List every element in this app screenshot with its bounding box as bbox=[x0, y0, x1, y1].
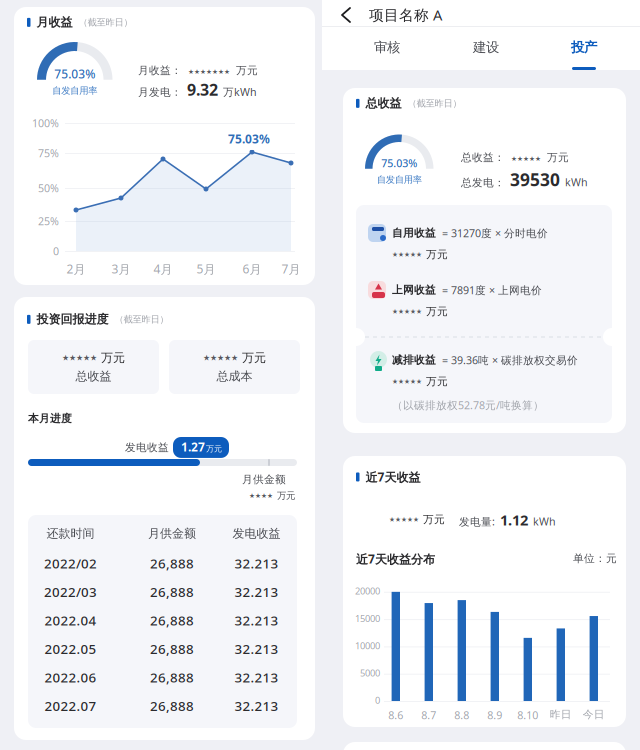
staticText: = 39.36吨 × 碳排放权交易价 bbox=[442, 353, 578, 367]
staticText: 本月进度 bbox=[28, 412, 72, 425]
staticText: 7月 bbox=[281, 261, 300, 277]
staticText: 2022/03 bbox=[44, 583, 97, 601]
staticText: （以碳排放权52.78元/吨换算） bbox=[392, 398, 544, 412]
staticText: 8.9 bbox=[487, 708, 502, 722]
staticText: 2月 bbox=[66, 261, 85, 277]
staticText: 26,888 bbox=[150, 697, 194, 715]
staticText: 26,888 bbox=[150, 668, 194, 686]
staticText: 万元 bbox=[101, 350, 125, 365]
staticText: 75.03% bbox=[54, 66, 95, 82]
staticText: kWh bbox=[565, 175, 588, 189]
staticText: 20000 bbox=[355, 585, 380, 597]
staticText: 5月 bbox=[196, 261, 215, 277]
staticText: 0 bbox=[53, 244, 59, 258]
staticText: 万元 bbox=[426, 305, 448, 318]
staticText: 2022.05 bbox=[44, 640, 96, 658]
staticText: = 7891度 × 上网电价 bbox=[442, 283, 542, 297]
staticText: 8.10 bbox=[517, 708, 538, 722]
staticText: 26,888 bbox=[150, 583, 194, 601]
staticText: 总成本 bbox=[216, 369, 252, 384]
staticText: 9.32 bbox=[187, 79, 218, 100]
staticText: 75.03% bbox=[228, 131, 270, 147]
staticText: 自发自用率 bbox=[52, 85, 97, 96]
staticText: 32.213 bbox=[234, 668, 278, 686]
staticText: 8.8 bbox=[454, 708, 469, 722]
staticText: ★★★★★★★ bbox=[188, 68, 230, 76]
staticText: 万元 bbox=[206, 444, 222, 454]
staticText: 万元 bbox=[423, 513, 445, 526]
staticText: 1.27 bbox=[181, 439, 205, 455]
staticText: 26,888 bbox=[150, 611, 194, 629]
staticText: 4月 bbox=[153, 261, 172, 277]
staticText: 25% bbox=[38, 214, 59, 228]
staticText: 减排收益 bbox=[392, 353, 436, 366]
staticText: 1.12 bbox=[500, 510, 528, 529]
staticText: 6月 bbox=[242, 261, 261, 277]
staticText: 3月 bbox=[111, 261, 130, 277]
staticText: ★★★★★ bbox=[392, 251, 422, 258]
staticText: = 31270度 × 分时电价 bbox=[442, 226, 548, 240]
staticText: 8.7 bbox=[421, 708, 436, 722]
staticText: 万元 bbox=[547, 151, 569, 164]
staticText: 26,888 bbox=[150, 554, 194, 572]
staticText: （截至昨日） bbox=[78, 17, 132, 28]
staticText: 自发自用率 bbox=[377, 174, 422, 185]
staticText: 总收益： bbox=[461, 151, 505, 164]
staticText: ★★★★★ bbox=[511, 155, 541, 163]
staticText: 审核 bbox=[374, 39, 400, 55]
staticText: 75.03% bbox=[381, 156, 417, 170]
staticText: 投资回报进度 bbox=[36, 312, 108, 327]
staticText: 8.6 bbox=[388, 708, 403, 722]
staticText: 发电收益 bbox=[125, 441, 169, 454]
staticText: 上网收益 bbox=[392, 283, 436, 296]
staticText: 总收益 bbox=[75, 369, 111, 384]
staticText: 万元 bbox=[426, 248, 448, 261]
staticText: 2022/02 bbox=[44, 554, 97, 572]
staticText: kWh bbox=[533, 514, 556, 528]
staticText: 发电量: bbox=[459, 514, 495, 529]
staticText: ★★★★★ bbox=[389, 516, 419, 523]
staticText: 万元 bbox=[242, 350, 266, 365]
staticText: 32.213 bbox=[234, 640, 278, 658]
staticText: 昨日 bbox=[550, 708, 572, 721]
button[interactable]: 投产 bbox=[559, 27, 609, 70]
staticText: 26,888 bbox=[150, 640, 194, 658]
staticText: 100% bbox=[32, 116, 59, 130]
staticText: ★★★★★ bbox=[392, 378, 422, 385]
staticText: 投产 bbox=[571, 39, 597, 55]
staticText: 月供金额 bbox=[148, 526, 196, 541]
staticText: 今日 bbox=[583, 708, 605, 721]
staticText: 还款时间 bbox=[46, 526, 94, 541]
staticText: ★★★★★ bbox=[203, 353, 238, 362]
staticText: 万kWh bbox=[223, 85, 257, 99]
staticText: 项目名称 A bbox=[369, 5, 442, 24]
staticText: 月收益： bbox=[138, 64, 182, 77]
staticText: （截至昨日） bbox=[407, 98, 461, 109]
staticText: 75% bbox=[38, 146, 59, 160]
staticText: 5000 bbox=[360, 667, 380, 679]
staticText: 0 bbox=[375, 694, 380, 706]
staticText: 单位：元 bbox=[573, 552, 617, 565]
staticText: 月收益 bbox=[36, 15, 72, 30]
staticText: ★★★★ bbox=[249, 492, 273, 499]
staticText: 万元 bbox=[277, 490, 295, 501]
staticText: ★★★★★ bbox=[62, 353, 97, 362]
button[interactable]: Back bbox=[322, 0, 366, 26]
button[interactable]: 建设 bbox=[461, 27, 511, 70]
staticText: 万元 bbox=[236, 64, 258, 77]
staticText: 建设 bbox=[473, 39, 499, 55]
staticText: 50% bbox=[38, 181, 59, 195]
staticText: 自用收益 bbox=[392, 226, 436, 239]
staticText: 近7天收益 bbox=[365, 469, 420, 485]
staticText: 15000 bbox=[355, 612, 380, 624]
staticText: 总发电： bbox=[461, 176, 505, 189]
staticText: 万元 bbox=[426, 375, 448, 388]
staticText: 32.213 bbox=[234, 583, 278, 601]
staticText: 32.213 bbox=[234, 611, 278, 629]
button[interactable]: 审核 bbox=[362, 27, 412, 70]
staticText: 32.213 bbox=[234, 554, 278, 572]
staticText: 2022.04 bbox=[44, 611, 96, 629]
staticText: 32.213 bbox=[234, 697, 278, 715]
staticText: 10000 bbox=[355, 639, 380, 652]
staticText: 2022.06 bbox=[44, 668, 96, 686]
